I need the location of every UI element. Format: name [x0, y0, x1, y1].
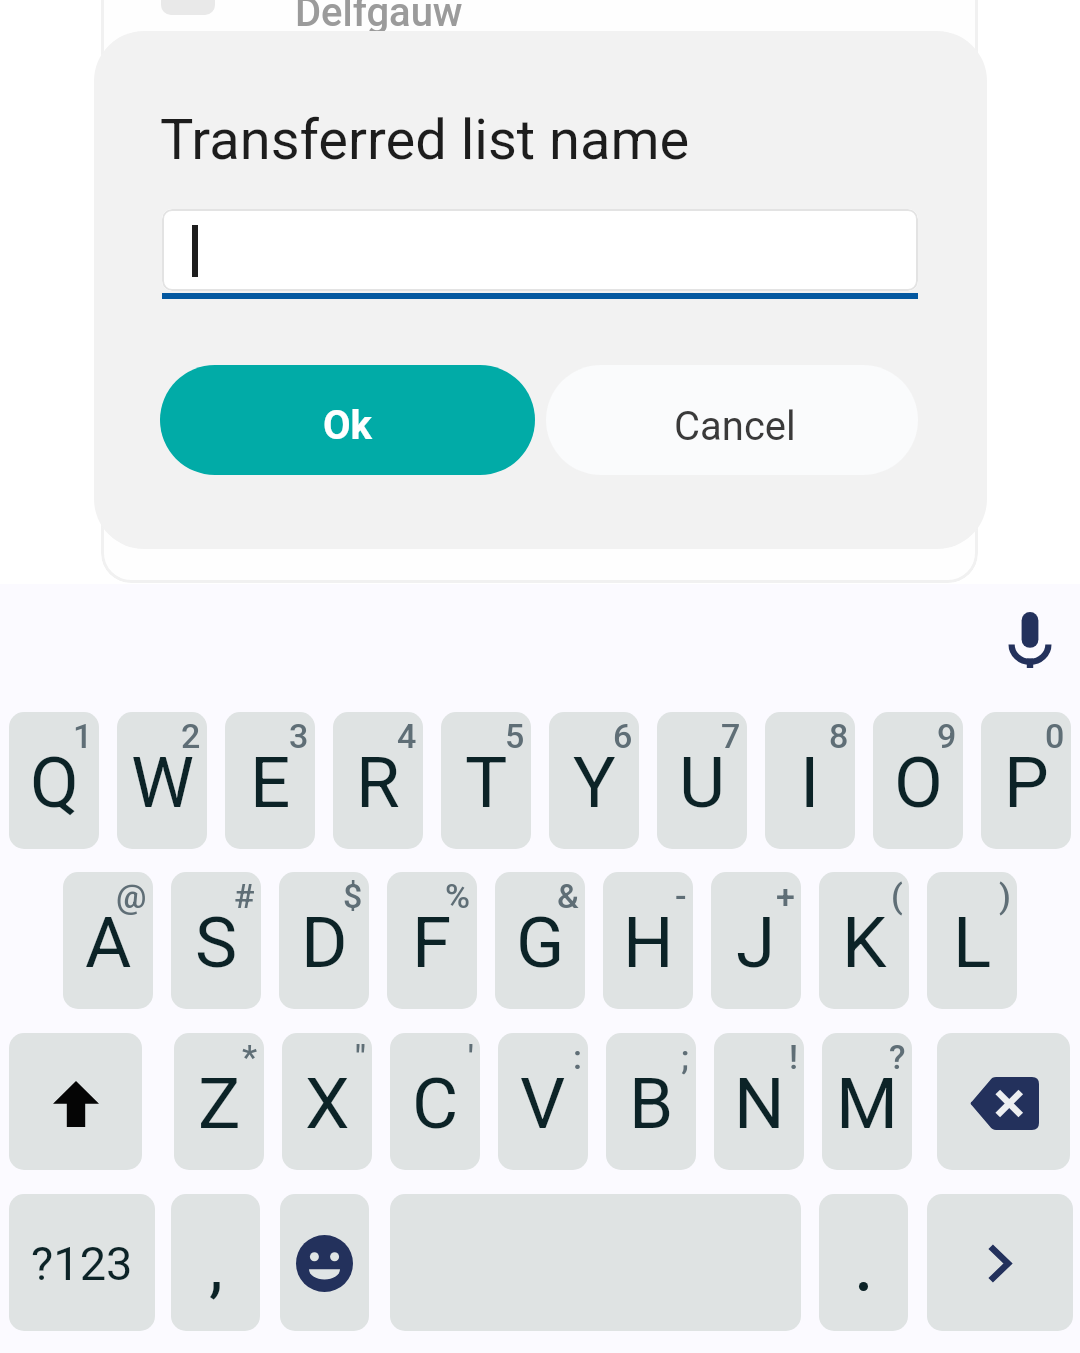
staticText: X: [305, 1062, 350, 1145]
staticText: 1: [73, 716, 93, 756]
staticText: %: [445, 876, 471, 916]
button[interactable]: Period: [819, 1194, 908, 1331]
button[interactable]: Ok: [160, 365, 535, 475]
staticText: ): [999, 876, 1011, 916]
staticText: S: [195, 901, 238, 984]
button[interactable]: Voice input: [990, 600, 1070, 680]
staticText: #: [234, 876, 255, 916]
staticText: B: [629, 1062, 674, 1145]
staticText: C: [412, 1062, 459, 1145]
staticText: O: [894, 741, 943, 824]
button[interactable]: Enter: [927, 1194, 1073, 1331]
staticText: 2: [181, 716, 201, 756]
staticText: $: [343, 876, 363, 916]
staticText: 9: [937, 716, 957, 756]
button[interactable]: R: [333, 712, 423, 849]
staticText: H: [623, 901, 674, 984]
staticText: ?123: [31, 1236, 133, 1291]
staticText: Z: [198, 1062, 241, 1145]
button[interactable]: B: [606, 1033, 696, 1170]
button[interactable]: S: [171, 872, 261, 1009]
staticText: Transferred list name: [160, 107, 690, 173]
button[interactable]: K: [819, 872, 909, 1009]
staticText: R: [356, 741, 400, 824]
staticText: Cancel: [674, 403, 796, 450]
button[interactable]: Q: [9, 712, 99, 849]
staticText: 4: [397, 716, 417, 756]
button[interactable]: O: [873, 712, 963, 849]
staticText: K: [842, 901, 887, 984]
staticText: &: [557, 876, 579, 916]
staticText: Q: [30, 741, 79, 824]
staticText: +: [776, 876, 795, 916]
staticText: A: [85, 901, 132, 984]
staticText: Ok: [323, 402, 372, 449]
staticText: D: [301, 901, 348, 984]
staticText: *: [242, 1037, 258, 1077]
staticText: T: [465, 741, 508, 824]
button[interactable]: X: [282, 1033, 372, 1170]
staticText: G: [516, 901, 565, 984]
staticText: V: [520, 1062, 566, 1145]
button[interactable]: V: [498, 1033, 588, 1170]
button[interactable]: D: [279, 872, 369, 1009]
staticText: 0: [1045, 716, 1065, 756]
staticText: ': [468, 1037, 474, 1077]
staticText: Y: [573, 741, 616, 824]
button[interactable]: Y: [549, 712, 639, 849]
button[interactable]: Emoji: [280, 1194, 369, 1331]
staticText: ?: [889, 1037, 906, 1077]
button[interactable]: ,: [171, 1194, 260, 1331]
staticText: 3: [289, 716, 309, 756]
button[interactable]: M: [822, 1033, 912, 1170]
staticText: (: [891, 876, 903, 916]
staticText: E: [250, 741, 291, 824]
button[interactable]: Z: [174, 1033, 264, 1170]
staticText: !: [789, 1037, 798, 1077]
button[interactable]: U: [657, 712, 747, 849]
staticText: F: [412, 901, 452, 984]
staticText: Delfgauw: [295, 0, 463, 36]
staticText: U: [679, 741, 726, 824]
staticText: ,: [209, 1224, 223, 1307]
button[interactable]: ?123: [9, 1194, 155, 1331]
button[interactable]: Backspace: [937, 1033, 1070, 1170]
button[interactable]: Cancel: [546, 365, 918, 475]
button[interactable]: A: [63, 872, 153, 1009]
staticText: -: [675, 876, 687, 916]
button[interactable]: H: [603, 872, 693, 1009]
staticText: I: [800, 741, 820, 824]
button[interactable]: W: [117, 712, 207, 849]
staticText: L: [953, 901, 992, 984]
button[interactable]: G: [495, 872, 585, 1009]
staticText: P: [1004, 741, 1049, 824]
button[interactable]: Shift: [9, 1033, 142, 1170]
button[interactable]: P: [981, 712, 1071, 849]
staticText: ;: [681, 1037, 690, 1077]
button[interactable]: L: [927, 872, 1017, 1009]
staticText: ": [355, 1037, 366, 1077]
button[interactable]: N: [714, 1033, 804, 1170]
staticText: 6: [613, 716, 633, 756]
staticText: @: [116, 876, 147, 916]
button[interactable]: T: [441, 712, 531, 849]
staticText: 7: [721, 716, 741, 756]
button[interactable]: F: [387, 872, 477, 1009]
button[interactable]: E: [225, 712, 315, 849]
staticText: N: [734, 1062, 785, 1145]
button[interactable]: I: [765, 712, 855, 849]
staticText: 8: [829, 716, 849, 756]
staticText: W: [131, 741, 194, 824]
staticText: :: [573, 1037, 582, 1077]
staticText: J: [736, 901, 776, 984]
button[interactable]: C: [390, 1033, 480, 1170]
staticText: M: [836, 1062, 898, 1145]
button[interactable]: J: [711, 872, 801, 1009]
staticText: 5: [505, 716, 525, 756]
